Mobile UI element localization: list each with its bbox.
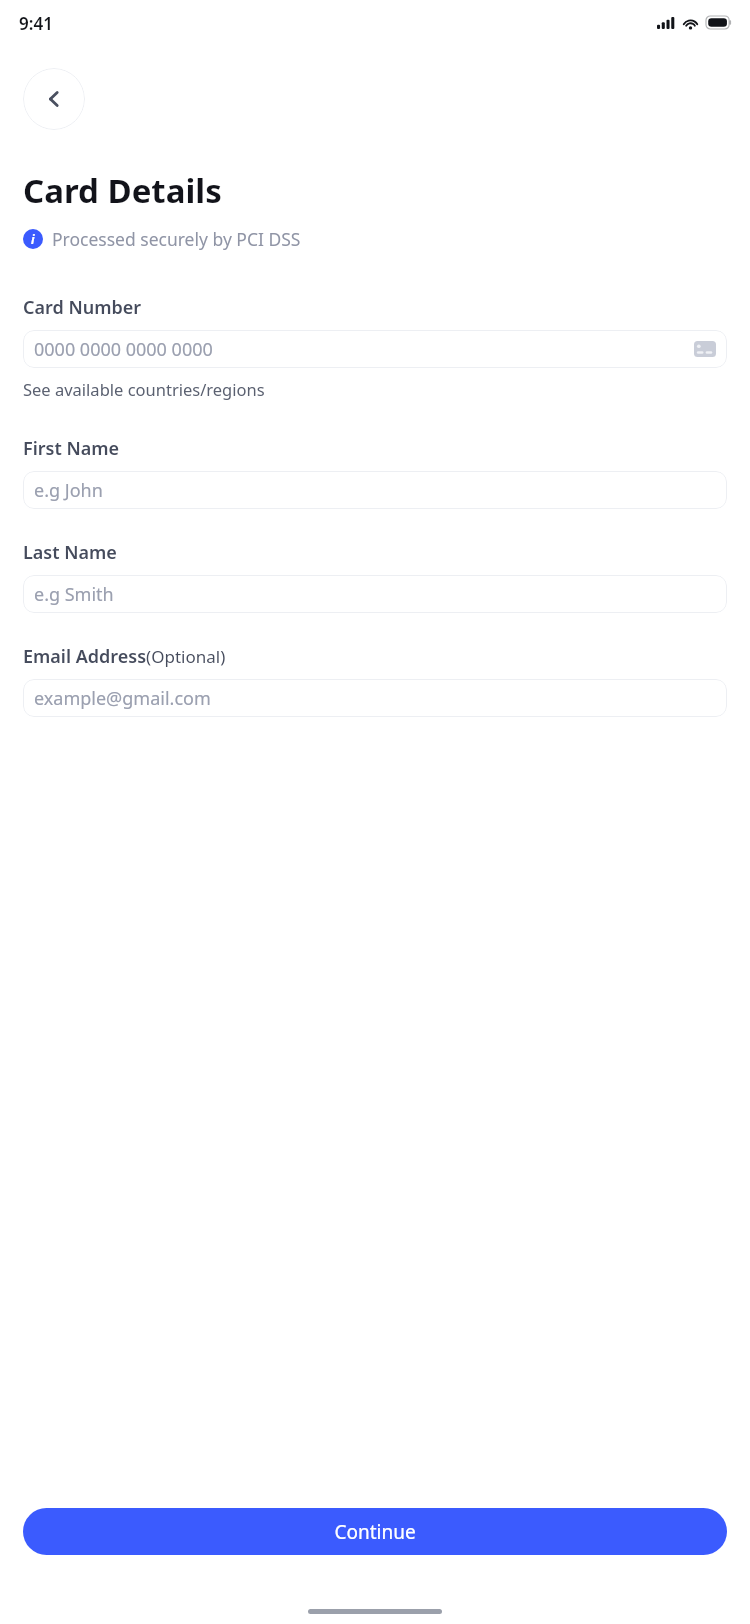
button[interactable]: 0000 0000 0000 0000	[23, 330, 727, 368]
staticText: Card Number	[23, 295, 142, 320]
button[interactable]: e.g Smith	[23, 575, 727, 613]
staticText: Last Name	[23, 540, 117, 565]
button[interactable]: e.g John	[23, 471, 727, 509]
staticText: example@gmail.com	[34, 686, 716, 711]
staticText: e.g John	[34, 478, 716, 503]
button[interactable]: See available countries/regions	[23, 378, 265, 400]
button[interactable]: Continue	[23, 1508, 727, 1555]
staticText: i	[31, 231, 35, 247]
staticText: First Name	[23, 436, 120, 461]
button[interactable]: Back	[23, 68, 85, 130]
staticText: Continue	[334, 1519, 416, 1545]
staticText: Card Details	[23, 168, 222, 213]
button[interactable]: example@gmail.com	[23, 679, 727, 717]
staticText: 0000 0000 0000 0000	[34, 337, 694, 362]
staticText: Processed securely by PCI DSS	[52, 227, 301, 251]
staticText: Email Address(Optional)	[23, 644, 226, 669]
staticText: e.g Smith	[34, 582, 716, 607]
staticText: 9:41	[19, 12, 53, 35]
